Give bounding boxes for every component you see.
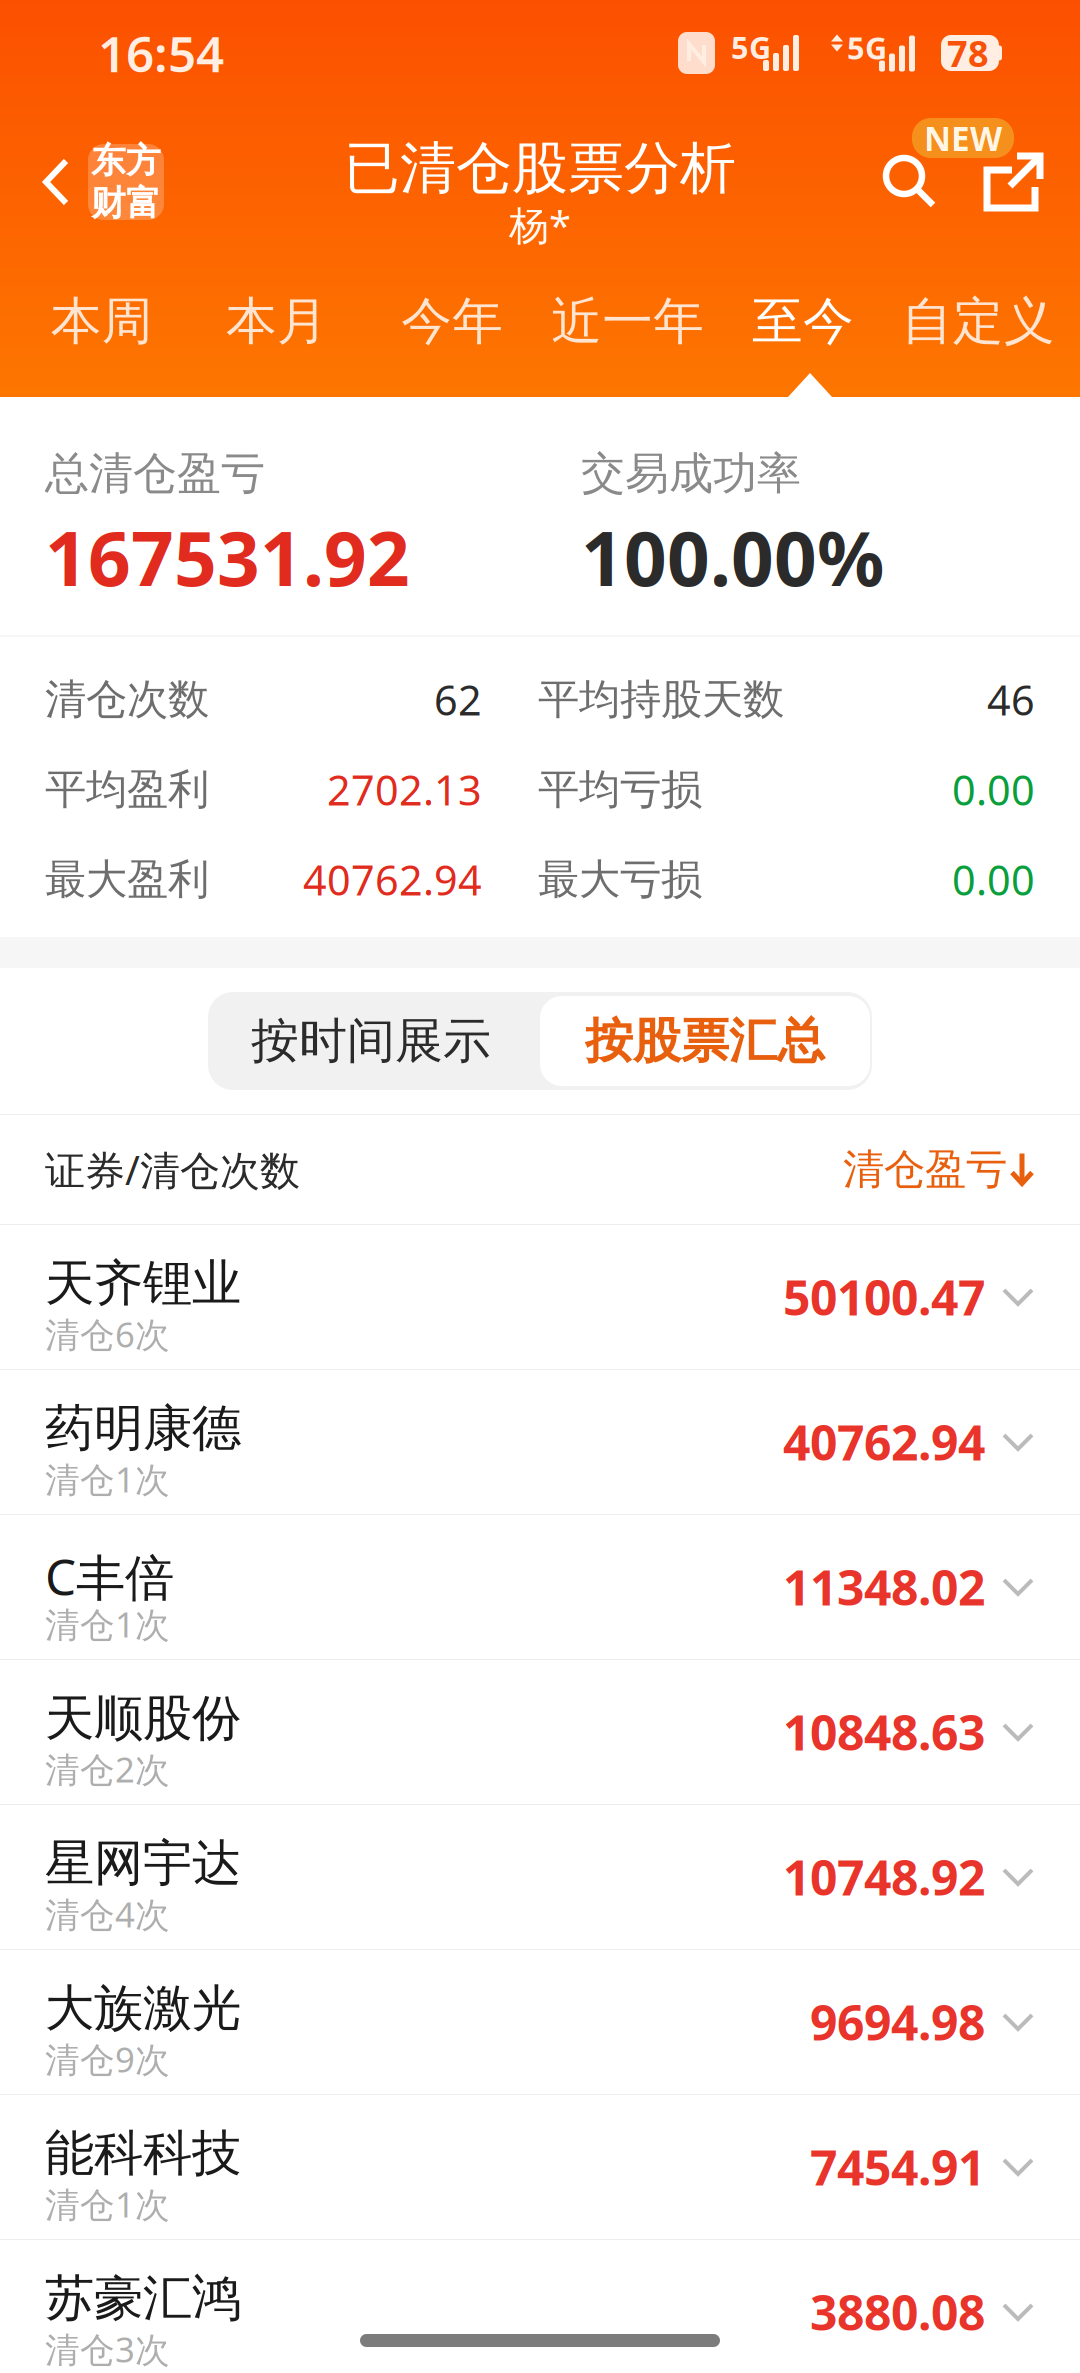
staticText: 16:54 bbox=[98, 20, 224, 86]
button[interactable]: 星网宇达 bbox=[0, 1805, 1080, 1950]
button[interactable]: C丰倍 bbox=[0, 1515, 1080, 1660]
staticText: 苏豪汇鸿 bbox=[45, 2268, 241, 2329]
staticText: 交易成功率 bbox=[581, 446, 801, 500]
staticText: 100.00% bbox=[581, 507, 884, 607]
staticText: 财富 bbox=[91, 182, 161, 225]
staticText: 天齐锂业 bbox=[45, 1253, 241, 1314]
staticText: 按时间展示 bbox=[251, 1011, 491, 1070]
button[interactable]: 本周 bbox=[14, 250, 189, 393]
staticText: 11348.02 bbox=[783, 1555, 985, 1619]
button[interactable]: 药明康德 bbox=[0, 1370, 1080, 1515]
staticText: 本月 bbox=[226, 290, 328, 353]
button[interactable]: 苏豪汇鸿 bbox=[0, 2240, 1080, 2373]
staticText: 星网宇达 bbox=[45, 1833, 241, 1894]
staticText: 本周 bbox=[51, 290, 153, 353]
staticText: 清仓3次 bbox=[45, 2326, 170, 2372]
staticText: 清仓4次 bbox=[45, 1891, 170, 1937]
button[interactable]: 今年 bbox=[365, 250, 540, 393]
button[interactable]: 天齐锂业 bbox=[0, 1225, 1080, 1370]
staticText: 能科科技 bbox=[45, 2123, 241, 2184]
staticText: 平均亏损 bbox=[538, 764, 702, 815]
button[interactable]: 近一年 bbox=[540, 250, 715, 393]
button[interactable]: 能科科技 bbox=[0, 2095, 1080, 2240]
staticText: 0.00 bbox=[952, 852, 1035, 907]
staticText: 今年 bbox=[401, 290, 503, 353]
button[interactable]: 按股票汇总 bbox=[536, 992, 874, 1090]
staticText: 杨* bbox=[509, 198, 571, 251]
staticText: 证券/清仓次数 bbox=[45, 1143, 300, 1196]
staticText: 至今 bbox=[752, 290, 854, 353]
staticText: 平均持股天数 bbox=[538, 674, 784, 725]
staticText: 近一年 bbox=[551, 290, 704, 353]
staticText: 50100.47 bbox=[783, 1265, 985, 1329]
button[interactable]: 至今 bbox=[715, 250, 891, 393]
staticText: 东方 bbox=[91, 139, 161, 182]
staticText: 2702.13 bbox=[327, 762, 482, 817]
staticText: 平均盈利 bbox=[45, 764, 209, 815]
button[interactable]: 东方财富 bbox=[88, 144, 164, 220]
button[interactable]: 清仓盈亏 bbox=[843, 1144, 1035, 1195]
staticText: 最大亏损 bbox=[538, 854, 702, 905]
staticText: 清仓次数 bbox=[45, 674, 209, 725]
staticText: 40762.94 bbox=[303, 852, 482, 907]
staticText: 清仓1次 bbox=[45, 1456, 170, 1502]
button[interactable]: 分享 bbox=[982, 114, 1044, 250]
staticText: 清仓1次 bbox=[45, 1601, 170, 1647]
staticText: 167531.92 bbox=[45, 507, 410, 607]
staticText: 10848.63 bbox=[783, 1700, 985, 1764]
staticText: 5G bbox=[847, 27, 887, 68]
staticText: 清仓1次 bbox=[45, 2181, 170, 2227]
button[interactable]: 返回 bbox=[30, 114, 84, 250]
staticText: 按股票汇总 bbox=[585, 1011, 825, 1070]
button[interactable]: 搜索 bbox=[892, 114, 960, 250]
staticText: 78 bbox=[947, 29, 989, 77]
staticText: 清仓6次 bbox=[45, 1311, 170, 1357]
button[interactable]: 大族激光 bbox=[0, 1950, 1080, 2095]
button[interactable]: 天顺股份 bbox=[0, 1660, 1080, 1805]
button[interactable]: 按时间展示 bbox=[206, 992, 536, 1090]
staticText: 46 bbox=[987, 672, 1035, 727]
staticText: C丰倍 bbox=[45, 1543, 174, 1609]
staticText: 62 bbox=[434, 672, 482, 727]
staticText: 3880.08 bbox=[810, 2280, 985, 2344]
staticText: 清仓9次 bbox=[45, 2036, 170, 2082]
staticText: 最大盈利 bbox=[45, 854, 209, 905]
staticText: 0.00 bbox=[952, 762, 1035, 817]
button[interactable]: 自定义 bbox=[891, 250, 1066, 393]
staticText: 总清仓盈亏 bbox=[45, 446, 265, 500]
staticText: 40762.94 bbox=[783, 1410, 985, 1474]
staticText: 清仓盈亏 bbox=[843, 1144, 1007, 1195]
button[interactable]: 本月 bbox=[189, 250, 365, 393]
staticText: 药明康德 bbox=[45, 1398, 241, 1459]
staticText: 自定义 bbox=[902, 290, 1055, 353]
staticText: 天顺股份 bbox=[45, 1688, 241, 1749]
staticText: NEW bbox=[924, 116, 1002, 160]
staticText: 5G bbox=[731, 27, 771, 67]
staticText: 10748.92 bbox=[783, 1845, 985, 1909]
staticText: 大族激光 bbox=[45, 1978, 241, 2039]
staticText: 9694.98 bbox=[810, 1990, 985, 2054]
staticText: 已清仓股票分析 bbox=[344, 134, 736, 203]
staticText: 7454.91 bbox=[810, 2135, 985, 2199]
staticText: 清仓2次 bbox=[45, 1746, 170, 1792]
